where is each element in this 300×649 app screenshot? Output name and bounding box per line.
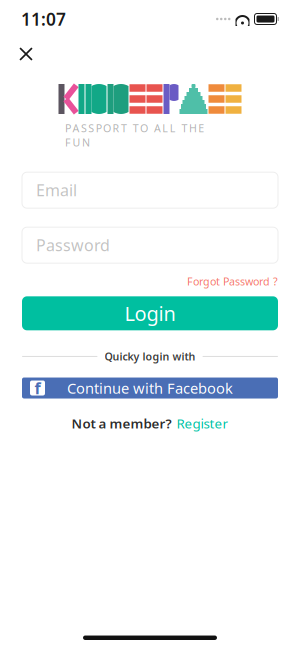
staticText: Password xyxy=(36,234,110,256)
staticText: 11:07 xyxy=(21,7,66,30)
staticText: Continue with Facebook xyxy=(67,378,233,398)
button[interactable]: Continue with Facebook xyxy=(22,377,278,398)
staticText: Forgot Password ? xyxy=(187,274,278,288)
staticText: Register xyxy=(176,414,228,432)
staticText: Not a member? xyxy=(71,414,171,432)
staticText: f xyxy=(34,377,40,399)
staticText: Email xyxy=(36,179,77,201)
staticText: Login xyxy=(124,300,175,327)
staticText: Quicky login with xyxy=(104,349,195,363)
button[interactable]: Register xyxy=(176,412,228,434)
button[interactable]: Login xyxy=(22,296,278,330)
staticText: PASSPORT TO ALL THE FUN xyxy=(65,121,235,135)
button[interactable]: Close xyxy=(8,38,44,70)
button[interactable]: Forgot Password ? xyxy=(187,272,278,290)
